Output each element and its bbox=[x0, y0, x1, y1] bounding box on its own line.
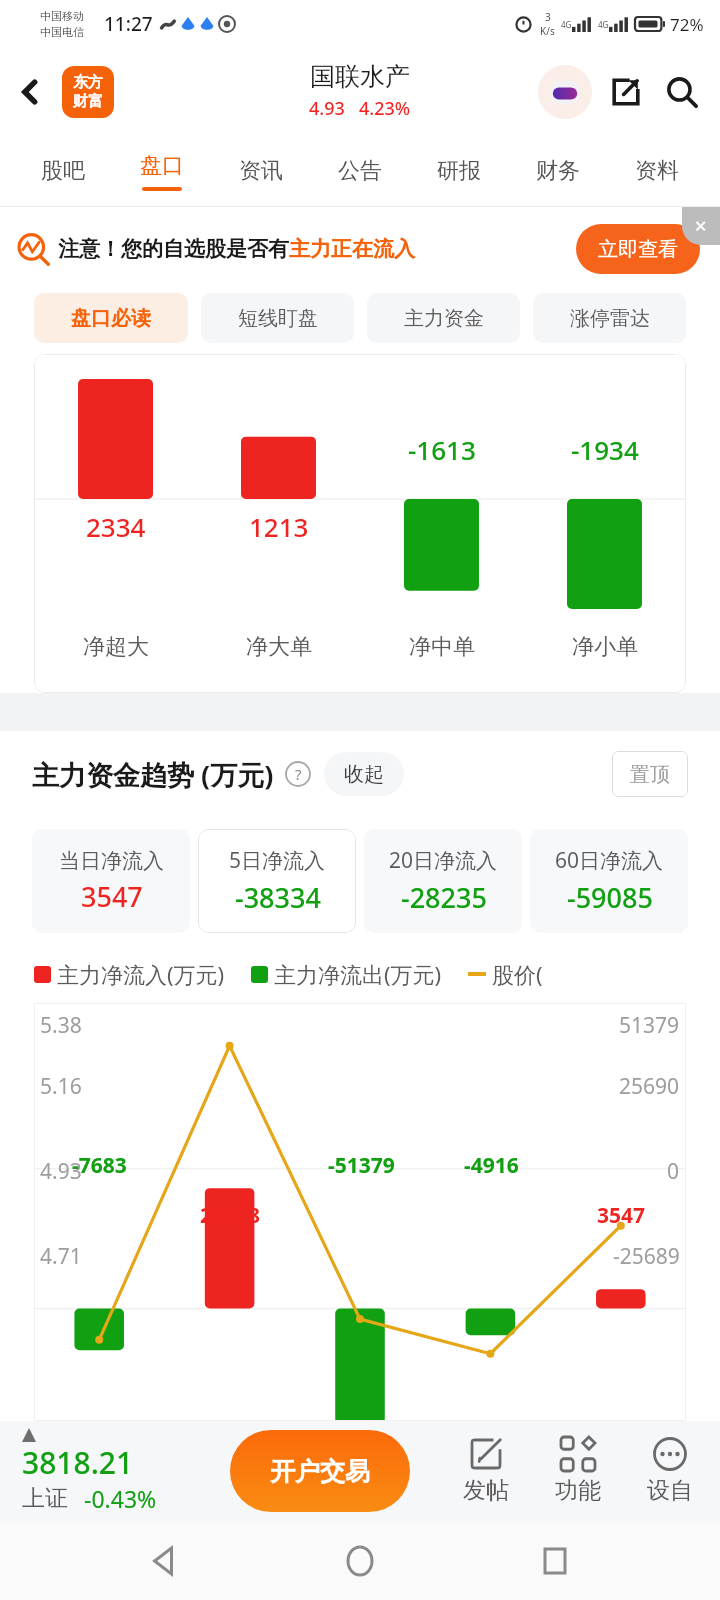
staticText: 东方 bbox=[73, 73, 103, 92]
button[interactable]: 当日净流入 bbox=[32, 829, 190, 933]
staticText: 净大单 bbox=[246, 633, 312, 661]
staticText: 11:27 bbox=[104, 11, 153, 37]
button[interactable]: 东方财富 bbox=[62, 66, 114, 118]
staticText: 财富 bbox=[73, 92, 103, 111]
staticText: -1934 bbox=[571, 432, 639, 467]
staticText: 盘口必读 bbox=[71, 306, 151, 331]
staticText: 短线盯盘 bbox=[238, 306, 318, 331]
button[interactable]: Help bbox=[282, 758, 314, 790]
staticText: ✕ bbox=[694, 217, 708, 236]
button[interactable]: Close bbox=[682, 207, 720, 245]
staticText: 盘口 bbox=[140, 152, 184, 180]
staticText: 4G bbox=[561, 19, 572, 30]
button[interactable]: 3547 bbox=[556, 1003, 686, 1421]
staticText: 中国电信 bbox=[40, 25, 84, 39]
button[interactable]: AI assistant bbox=[538, 65, 592, 119]
staticText: ? bbox=[295, 764, 302, 784]
staticText: -7683 bbox=[72, 1151, 127, 1180]
button[interactable]: 22098 bbox=[165, 1003, 296, 1421]
staticText: 主力资金 bbox=[404, 306, 484, 331]
staticText: -25689 bbox=[613, 1242, 680, 1271]
button[interactable]: Search bbox=[656, 66, 708, 118]
button[interactable]: 1213 bbox=[197, 354, 360, 693]
staticText: 开户交易 bbox=[270, 1456, 370, 1487]
staticText: 中国移动 bbox=[40, 9, 84, 23]
button[interactable]: 发帖 bbox=[440, 1421, 532, 1521]
staticText: 财务 bbox=[536, 157, 580, 185]
button[interactable]: 盘口必读 bbox=[34, 293, 188, 343]
button[interactable]: 涨停雷达 bbox=[533, 293, 686, 343]
button[interactable]: -1934 bbox=[523, 354, 686, 693]
staticText: 5.16 bbox=[40, 1072, 82, 1101]
staticText: -51379 bbox=[328, 1151, 395, 1180]
button[interactable]: 置顶 bbox=[630, 751, 670, 797]
staticText: 4G bbox=[598, 19, 609, 30]
staticText: 资料 bbox=[635, 157, 679, 185]
staticText: 4.93 bbox=[40, 1157, 82, 1186]
button[interactable]: 公告 bbox=[310, 136, 409, 206]
staticText: 主力净流入(万元) bbox=[57, 959, 225, 989]
staticText: 股吧 bbox=[41, 157, 85, 185]
button[interactable]: Home bbox=[330, 1531, 390, 1591]
staticText: 主力净流出(万元) bbox=[274, 959, 442, 989]
staticText: 注意！您的自选股是否有 bbox=[58, 236, 289, 262]
staticText: 20日净流入 bbox=[389, 846, 498, 875]
staticText: 资讯 bbox=[239, 157, 283, 185]
button[interactable]: 财务 bbox=[508, 136, 607, 206]
staticText: 3547 bbox=[81, 878, 143, 915]
staticText: 净小单 bbox=[572, 633, 638, 661]
staticText: 涨停雷达 bbox=[570, 306, 650, 331]
staticText: -38334 bbox=[235, 879, 321, 916]
staticText: 60日净流入 bbox=[555, 846, 664, 875]
staticText: 研报 bbox=[437, 157, 481, 185]
button[interactable]: 收起 bbox=[344, 752, 384, 796]
staticText: 主力资金趋势 (万元) bbox=[32, 756, 274, 793]
button[interactable]: 资料 bbox=[607, 136, 706, 206]
staticText: 22098 bbox=[200, 1201, 261, 1230]
staticText: 置顶 bbox=[630, 762, 670, 787]
button[interactable]: -4916 bbox=[426, 1003, 556, 1421]
staticText: 4.23% bbox=[359, 96, 411, 121]
button[interactable]: -7683 bbox=[34, 1003, 165, 1421]
staticText: 功能 bbox=[555, 1476, 601, 1505]
button[interactable]: Back bbox=[6, 68, 54, 116]
button[interactable]: 2334 bbox=[34, 354, 197, 693]
button[interactable]: -51379 bbox=[296, 1003, 426, 1421]
staticText: K/s bbox=[540, 24, 555, 38]
button[interactable]: 功能 bbox=[532, 1421, 624, 1521]
button[interactable]: 研报 bbox=[409, 136, 508, 206]
staticText: 5.38 bbox=[40, 1011, 82, 1040]
staticText: 净超大 bbox=[83, 633, 149, 661]
staticText: 股价( bbox=[492, 959, 543, 989]
staticText: -4916 bbox=[464, 1151, 519, 1180]
staticText: 0 bbox=[667, 1157, 680, 1186]
staticText: 收起 bbox=[344, 762, 384, 787]
staticText: 发帖 bbox=[463, 1476, 509, 1505]
staticText: 3547 bbox=[597, 1201, 646, 1230]
button[interactable]: 设自 bbox=[624, 1421, 716, 1521]
button[interactable]: 20日净流入 bbox=[364, 829, 522, 933]
button[interactable]: Recents bbox=[525, 1531, 585, 1591]
staticText: 2334 bbox=[86, 509, 146, 544]
staticText: 4.93 bbox=[309, 96, 345, 121]
button[interactable]: 主力资金 bbox=[367, 293, 520, 343]
button[interactable]: 股吧 bbox=[14, 136, 112, 206]
button[interactable]: -1613 bbox=[360, 354, 523, 693]
staticText: 25690 bbox=[619, 1072, 680, 1101]
button[interactable]: 短线盯盘 bbox=[201, 293, 354, 343]
button[interactable]: 60日净流入 bbox=[530, 829, 688, 933]
button[interactable]: 注意！您的自选股是否有 bbox=[16, 216, 700, 282]
button[interactable]: 资讯 bbox=[211, 136, 310, 206]
staticText: 公告 bbox=[338, 157, 382, 185]
button[interactable]: 立即查看 bbox=[598, 224, 678, 274]
staticText: -1613 bbox=[408, 432, 476, 467]
button[interactable]: 盘口 bbox=[112, 136, 211, 206]
staticText: 国联水产 bbox=[310, 61, 410, 92]
button[interactable]: 5日净流入 bbox=[198, 829, 356, 933]
button[interactable]: Back bbox=[135, 1531, 195, 1591]
button[interactable]: 开户交易 bbox=[230, 1430, 410, 1512]
button[interactable]: Share bbox=[600, 66, 652, 118]
staticText: -28235 bbox=[401, 879, 487, 916]
staticText: 72% bbox=[670, 13, 704, 36]
staticText: 3 bbox=[545, 10, 551, 24]
